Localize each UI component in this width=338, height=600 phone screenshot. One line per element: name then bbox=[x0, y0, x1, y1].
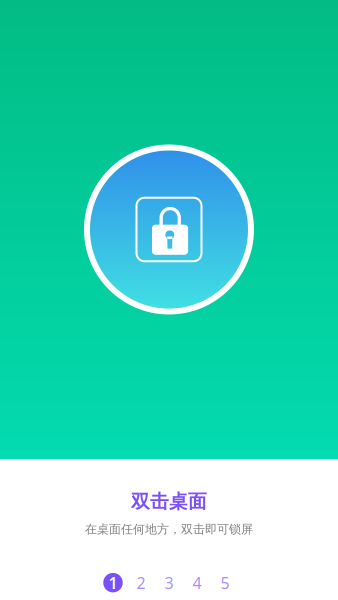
staticText: 在桌面任何地方，双击即可锁屏 bbox=[85, 522, 253, 537]
staticText: 5 bbox=[220, 572, 229, 593]
button[interactable]: 2 bbox=[131, 573, 151, 593]
button[interactable]: 1 bbox=[103, 573, 123, 593]
button[interactable]: 5 bbox=[215, 573, 235, 593]
staticText: 2 bbox=[136, 572, 145, 593]
staticText: 双击桌面 bbox=[131, 490, 207, 513]
staticText: 3 bbox=[164, 572, 173, 593]
staticText: 4 bbox=[192, 572, 201, 593]
button[interactable]: 3 bbox=[159, 573, 179, 593]
button[interactable]: 4 bbox=[187, 573, 207, 593]
staticText: 1 bbox=[108, 572, 117, 593]
